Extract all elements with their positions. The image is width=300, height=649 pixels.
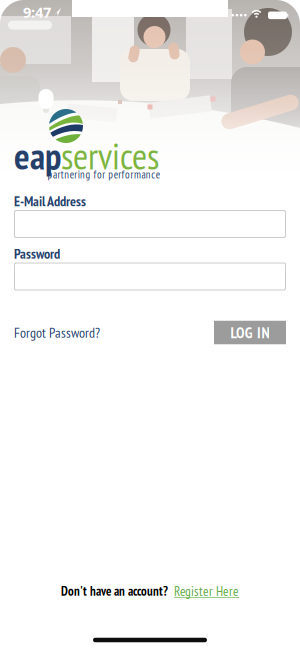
- button[interactable]: LOG IN: [214, 321, 286, 344]
- staticText: services: [61, 132, 159, 180]
- staticText: Don't have an account?: [61, 583, 168, 599]
- staticText: partnering for performance: [47, 168, 160, 181]
- staticText: E-Mail Address: [14, 192, 86, 210]
- staticText: eap: [14, 132, 61, 180]
- staticText: Forgot Password?: [14, 323, 100, 341]
- staticText: Register Here: [174, 582, 239, 600]
- button[interactable]: Forgot Password?: [14, 323, 100, 341]
- staticText: 9:47: [23, 2, 51, 22]
- staticText: Password: [14, 244, 60, 262]
- button[interactable]: Register Here: [174, 582, 239, 600]
- button[interactable]: [14, 210, 286, 238]
- button[interactable]: [14, 262, 286, 290]
- staticText: LOG IN: [230, 323, 269, 342]
